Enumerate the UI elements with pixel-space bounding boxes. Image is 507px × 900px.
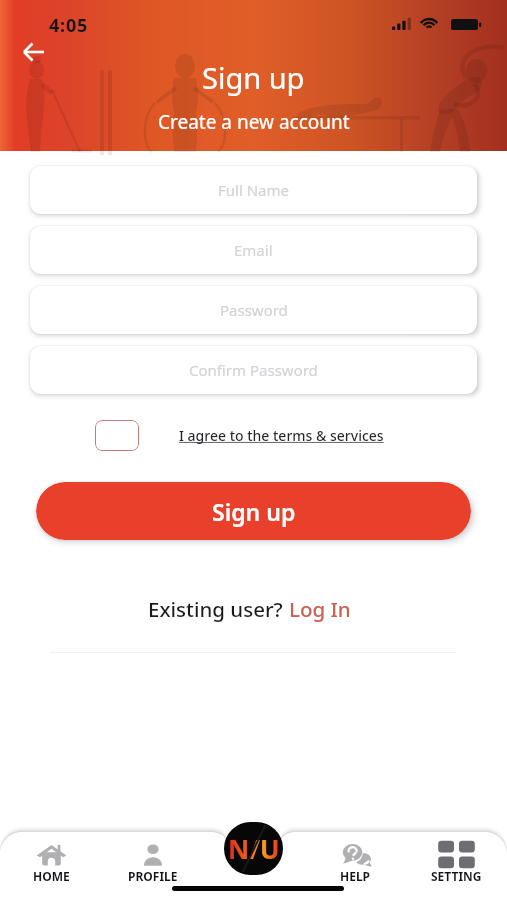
button[interactable]: HELP [305,832,406,884]
staticText: Confirm Password [189,360,318,380]
button[interactable]: PROFILE [102,832,204,884]
button[interactable]: SETTING [406,832,507,884]
button[interactable]: Full Name [30,166,477,214]
staticText: Existing user? [148,595,289,623]
staticText: HELP [340,868,371,884]
button[interactable]: Back [12,30,56,74]
button[interactable]: Agree to terms checkbox [95,420,139,451]
staticText: Email [234,240,273,260]
staticText: HOME [33,868,70,884]
button[interactable]: Email [30,226,477,274]
button[interactable]: Log In [289,595,351,623]
button[interactable]: Sign up [36,482,471,540]
button[interactable]: HOME [0,832,102,884]
staticText: Sign up [202,58,305,97]
staticText: N/U [228,831,280,866]
button[interactable]: I agree to the terms & services [179,426,384,445]
staticText: Create a new account [158,109,350,135]
button[interactable]: Password [30,286,477,334]
button[interactable]: NU app home [224,822,283,875]
staticText: PROFILE [128,868,178,884]
staticText: SETTING [431,868,482,884]
staticText: Sign up [212,496,296,527]
staticText: 4:05 [49,13,89,38]
staticText: Password [220,300,288,320]
staticText: Full Name [218,180,289,200]
button[interactable]: Confirm Password [30,346,477,394]
